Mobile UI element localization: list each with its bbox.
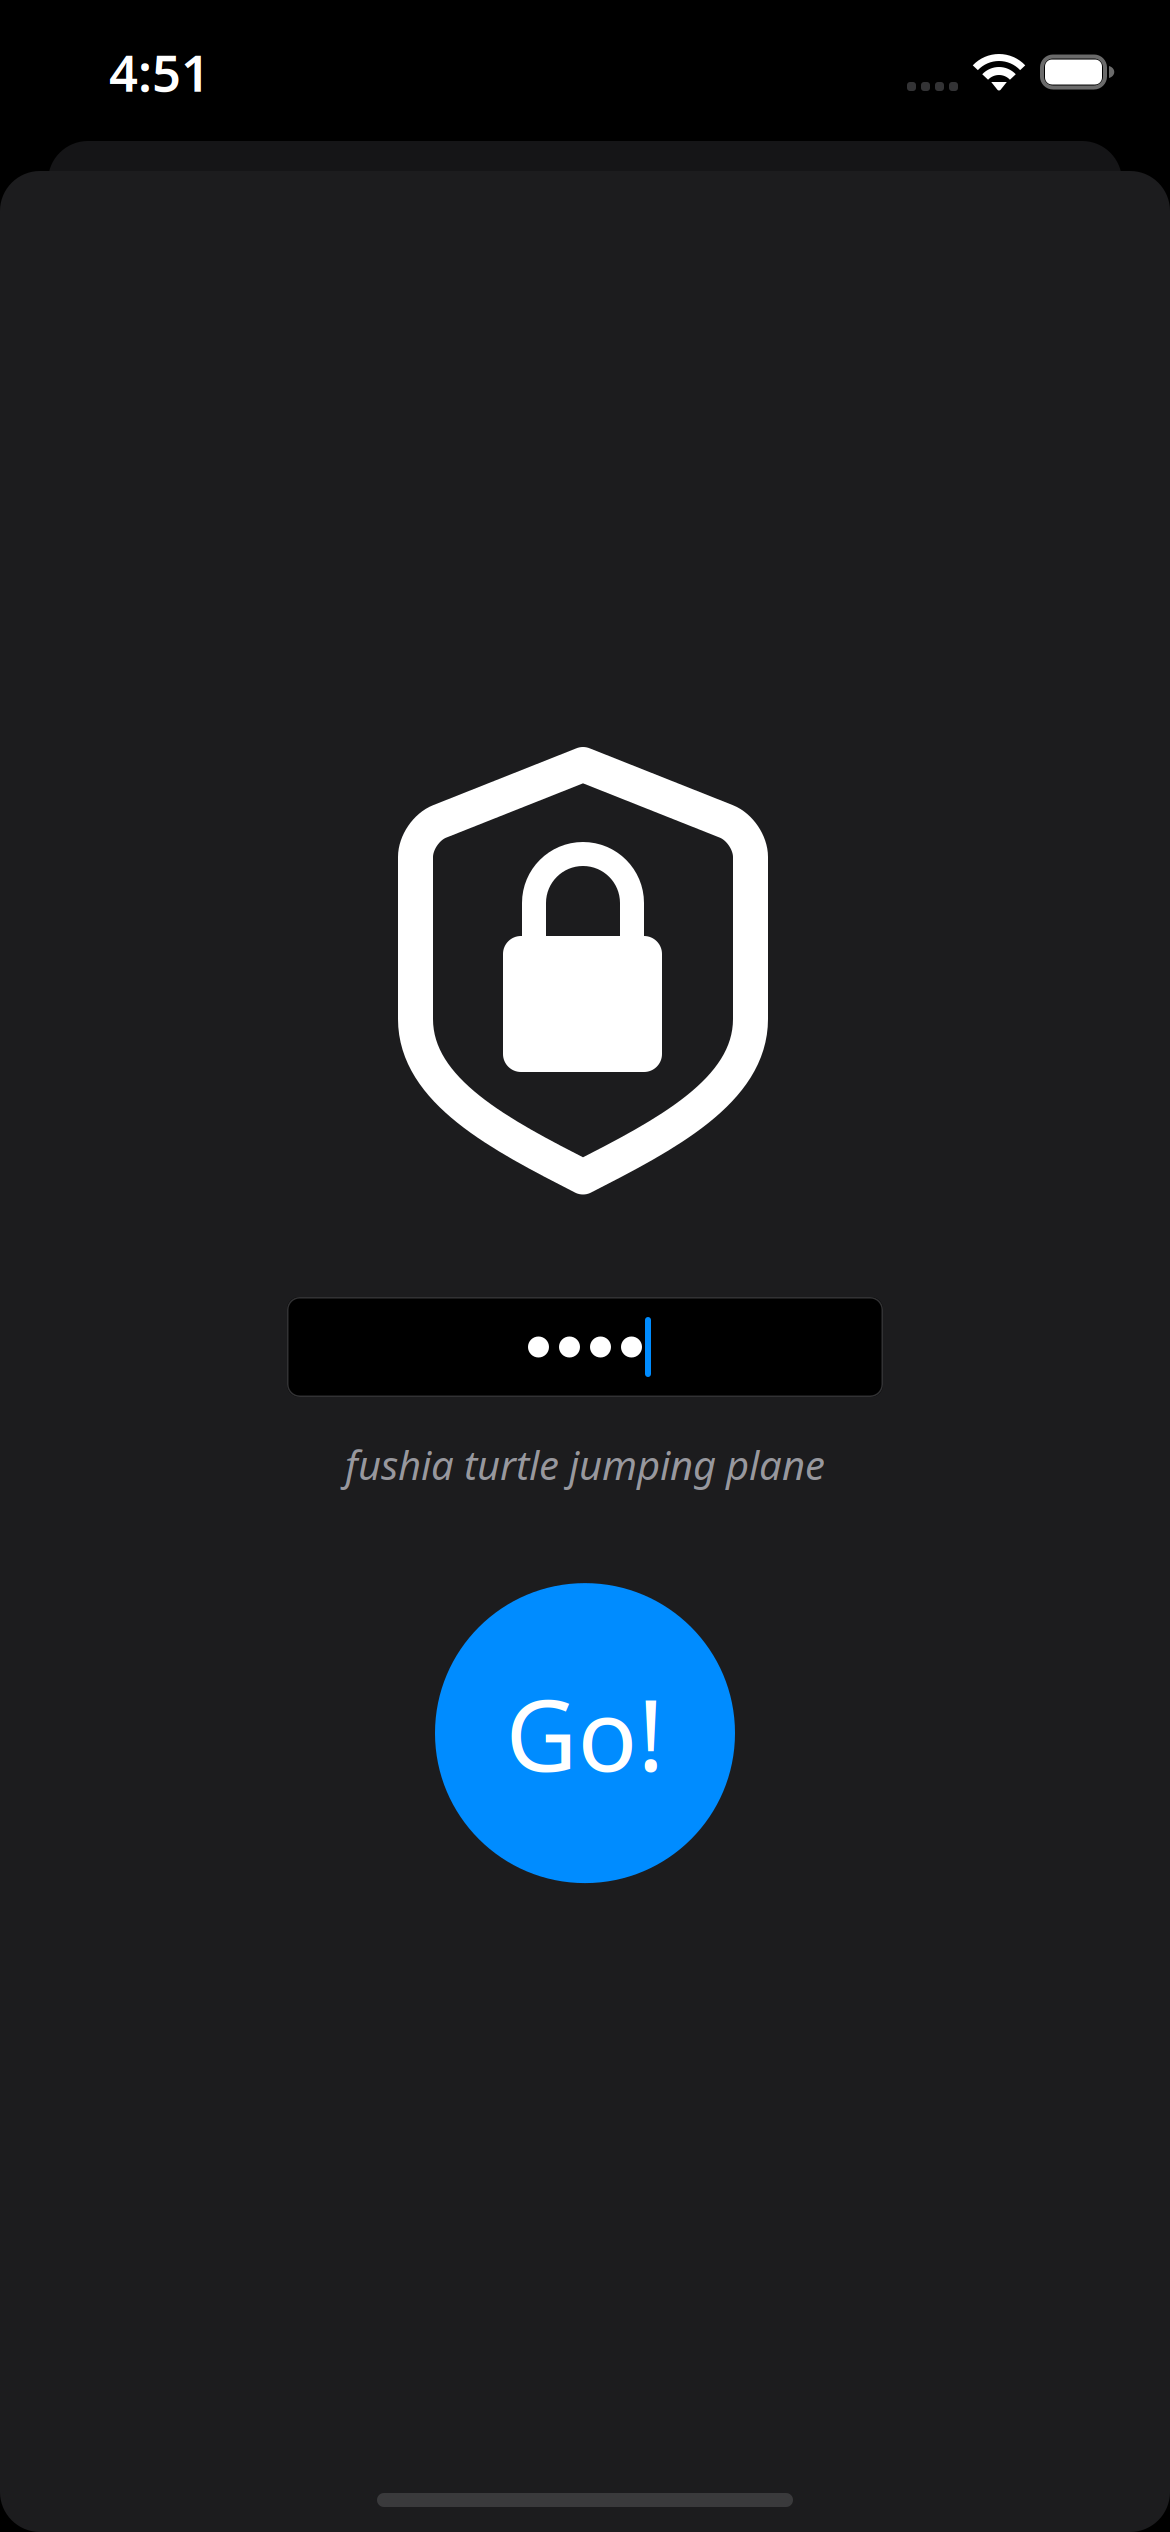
- staticText: 4:51: [109, 38, 210, 106]
- button[interactable]: Go!: [435, 1583, 735, 1883]
- staticText: Go!: [505, 1668, 664, 1799]
- button[interactable]: Passcode: [287, 1297, 883, 1397]
- staticText: fushia turtle jumping plane: [345, 1438, 825, 1491]
